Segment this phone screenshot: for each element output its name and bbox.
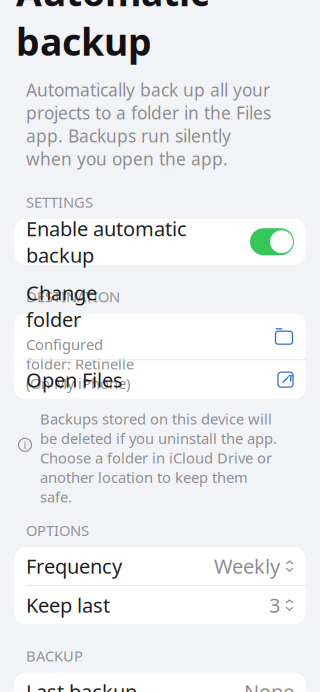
button[interactable]: Open Files [14, 360, 306, 399]
button[interactable]: Enable automatic backup [14, 219, 306, 265]
staticText: Keep last [26, 592, 110, 618]
staticText: 3 [269, 592, 280, 618]
button[interactable]: Frequency [14, 547, 306, 585]
staticText: Configured folder: Retinelle (On My iPho… [26, 334, 134, 393]
staticText: Automatically back up all your projects … [26, 78, 271, 170]
staticText: Frequency [26, 553, 122, 579]
staticText: Enable automatic backup [26, 215, 187, 268]
staticText: Open Files [26, 366, 123, 393]
staticText: None [244, 678, 294, 692]
staticText: OPTIONS [26, 521, 89, 540]
button[interactable]: Change folder [14, 313, 306, 359]
staticText: Backups stored on this device will be de… [40, 409, 277, 507]
staticText: Automatic backup [16, 0, 209, 66]
staticText: i [23, 438, 26, 452]
staticText: SETTINGS [26, 192, 93, 212]
staticText: Change folder [26, 279, 97, 332]
staticText: BACKUP [26, 646, 83, 665]
staticText: Weekly [214, 553, 280, 579]
button[interactable]: Keep last [14, 586, 306, 624]
staticText: DESTINATION [26, 287, 120, 306]
staticText: Last backup [26, 678, 137, 692]
